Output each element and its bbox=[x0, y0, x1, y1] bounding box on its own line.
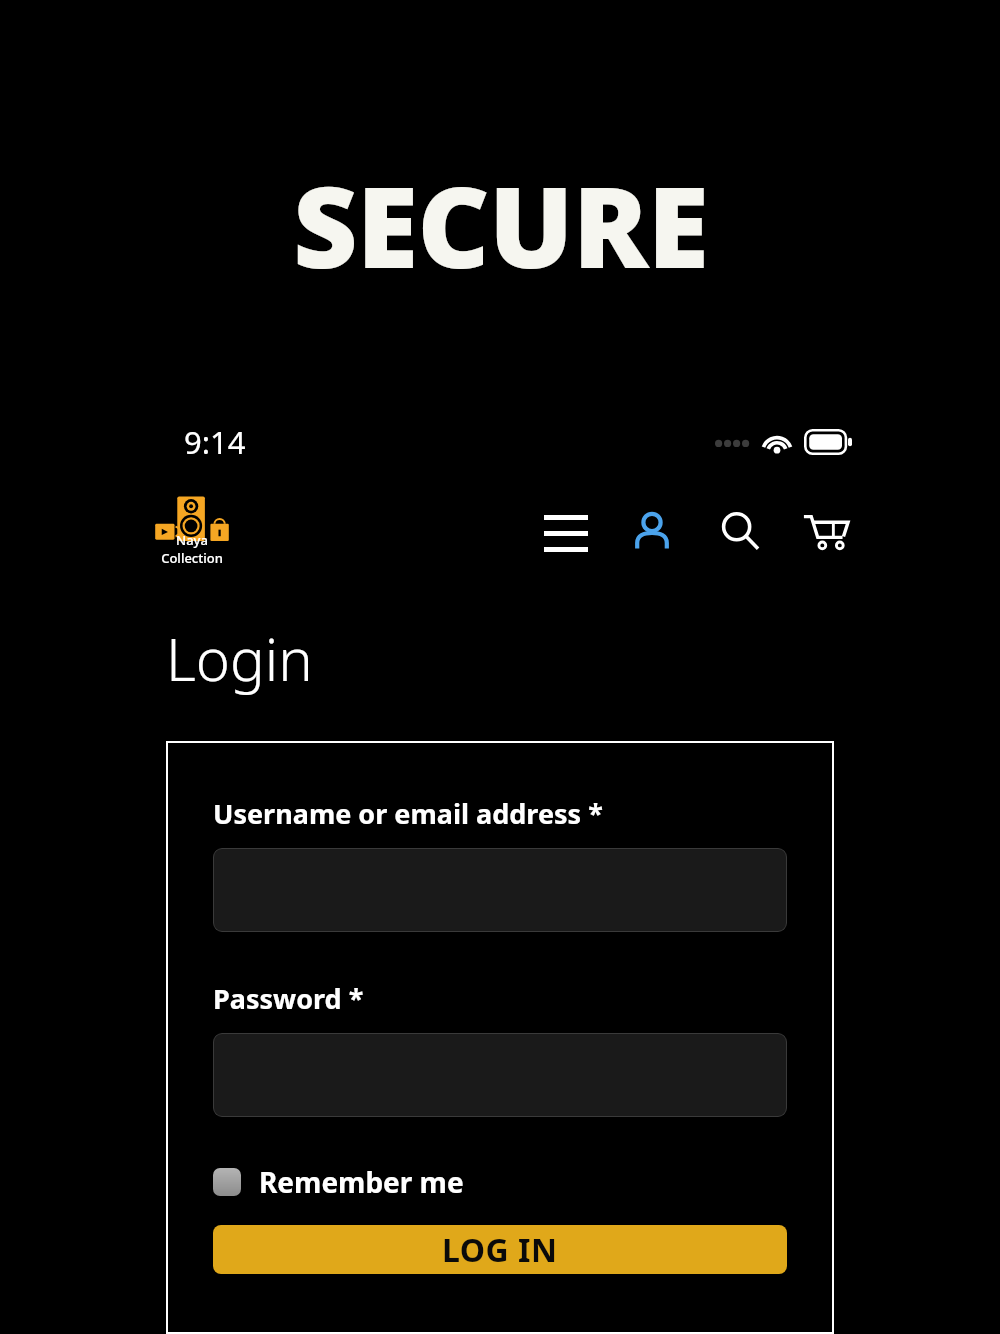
button[interactable]: Naya Collection home bbox=[146, 495, 238, 567]
button[interactable]: Account bbox=[624, 503, 680, 559]
button[interactable]: Search bbox=[712, 503, 768, 559]
staticText: LOG IN bbox=[442, 1228, 558, 1272]
staticText: Naya Collection bbox=[146, 531, 238, 567]
button[interactable]: LOG IN bbox=[213, 1225, 787, 1274]
button[interactable]: Menu bbox=[538, 503, 594, 559]
button[interactable] bbox=[213, 848, 787, 932]
button[interactable]: Cart bbox=[798, 503, 854, 559]
staticText: Username or email address * bbox=[213, 795, 603, 832]
staticText: Login bbox=[166, 619, 313, 698]
staticText: Remember me bbox=[259, 1163, 464, 1201]
button[interactable]: Remember me bbox=[213, 1161, 464, 1203]
staticText: SECURE bbox=[293, 148, 708, 301]
staticText: 9:14 bbox=[184, 421, 246, 463]
staticText: Password * bbox=[213, 980, 364, 1017]
button[interactable] bbox=[213, 1033, 787, 1117]
